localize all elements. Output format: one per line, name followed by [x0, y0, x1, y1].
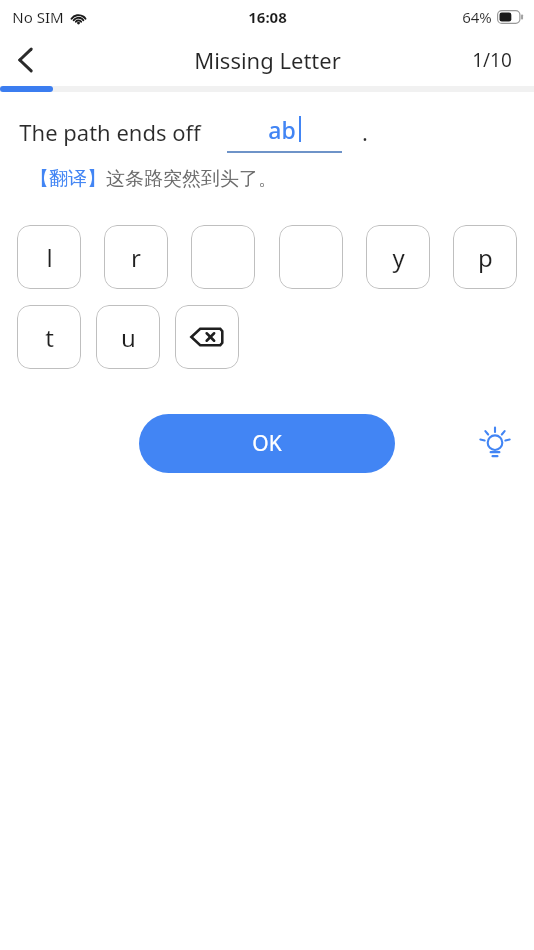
- button[interactable]: t: [17, 305, 81, 369]
- staticText: OK: [252, 429, 282, 458]
- staticText: Missing Letter: [194, 45, 341, 75]
- staticText: .: [362, 117, 368, 147]
- button[interactable]: p: [453, 225, 517, 289]
- button[interactable]: Empty letter tile: [191, 225, 255, 289]
- staticText: No SIM: [12, 7, 64, 27]
- button[interactable]: Empty letter tile: [279, 225, 343, 289]
- button[interactable]: u: [96, 305, 160, 369]
- staticText: 16:08: [248, 7, 287, 27]
- button[interactable]: Backspace: [175, 305, 239, 369]
- button[interactable]: ab: [227, 114, 342, 153]
- staticText: r: [131, 241, 141, 274]
- staticText: l: [46, 241, 53, 274]
- staticText: 【翻译】这条路突然到头了。: [30, 167, 277, 191]
- staticText: y: [392, 241, 405, 274]
- button[interactable]: Hint: [473, 422, 517, 466]
- staticText: p: [478, 241, 493, 274]
- staticText: ab: [268, 114, 296, 144]
- button[interactable]: l: [17, 225, 81, 289]
- staticText: 64%: [462, 7, 492, 27]
- staticText: u: [121, 321, 136, 354]
- staticText: 1/10: [472, 47, 512, 73]
- staticText: t: [45, 321, 54, 354]
- staticText: The path ends off: [19, 117, 201, 147]
- button[interactable]: y: [366, 225, 430, 289]
- button[interactable]: Back: [0, 34, 52, 86]
- button[interactable]: OK: [139, 414, 395, 473]
- button[interactable]: r: [104, 225, 168, 289]
